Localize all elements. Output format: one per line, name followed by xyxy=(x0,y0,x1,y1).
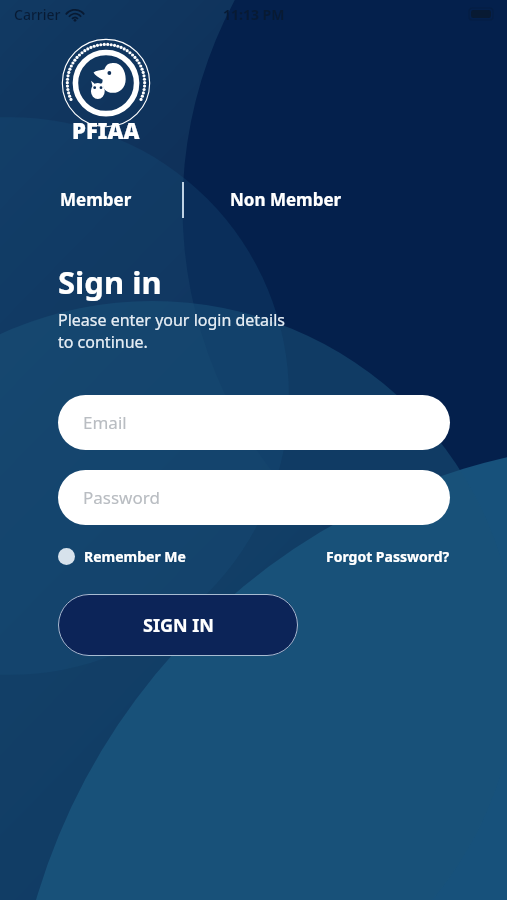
staticText: Member xyxy=(60,188,132,211)
staticText: to continue. xyxy=(58,331,148,353)
staticText: 11:13 PM xyxy=(223,5,285,24)
staticText: PFIAA xyxy=(72,115,140,145)
staticText: Please enter your login details xyxy=(58,309,285,331)
staticText: SIGN IN xyxy=(143,613,214,638)
button[interactable]: SIGN IN xyxy=(58,594,298,656)
button[interactable]: Password xyxy=(58,470,450,525)
button[interactable]: Remember Me xyxy=(58,543,186,570)
staticText: Email xyxy=(83,411,127,434)
staticText: Sign in xyxy=(58,261,162,303)
button[interactable]: Non Member xyxy=(228,180,344,219)
staticText: Password xyxy=(83,486,160,509)
button[interactable]: Forgot Password? xyxy=(326,543,450,570)
staticText: Carrier xyxy=(14,5,61,24)
button[interactable]: Member xyxy=(58,180,134,219)
button[interactable]: Email xyxy=(58,395,450,450)
staticText: Forgot Password? xyxy=(326,547,450,566)
staticText: Non Member xyxy=(230,188,342,211)
other: PFIAA logo xyxy=(58,36,154,146)
staticText: Remember Me xyxy=(84,547,186,566)
